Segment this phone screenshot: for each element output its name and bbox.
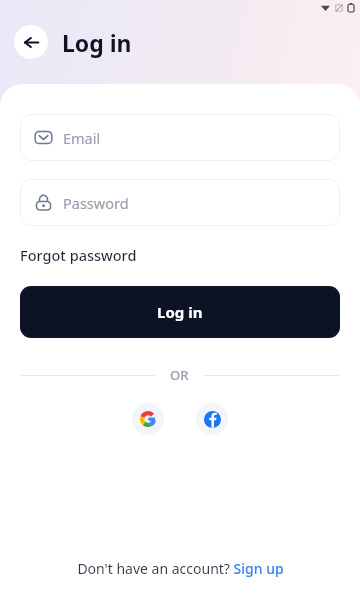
button[interactable]: Back [14, 25, 48, 59]
button[interactable]: Password [20, 179, 340, 226]
staticText: Log in [62, 27, 132, 58]
staticText: Don't have an account? Sign up [77, 559, 284, 578]
staticText: Password [63, 193, 129, 213]
staticText: Log in [157, 302, 203, 322]
button[interactable]: Sign in with Facebook [196, 403, 228, 435]
button[interactable]: Email [20, 114, 340, 161]
button[interactable]: Log in [20, 286, 340, 338]
staticText: OR [170, 366, 189, 384]
button[interactable]: Sign in with Google [132, 403, 164, 435]
staticText: Forgot password [20, 245, 137, 265]
button[interactable]: Forgot password [20, 245, 137, 265]
button[interactable]: Don't have an account? Sign up [0, 559, 360, 578]
staticText: Email [63, 128, 101, 148]
